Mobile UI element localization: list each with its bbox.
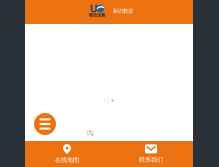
staticText: 联系我们 bbox=[139, 156, 163, 164]
staticText: 联合运营 bbox=[89, 12, 105, 18]
staticText: U bbox=[90, 1, 98, 15]
button[interactable]: Menu bbox=[34, 113, 56, 135]
button[interactable]: 联系我们 bbox=[109, 141, 193, 167]
staticText: 在线地图 bbox=[55, 156, 79, 164]
staticText: 标识数据 bbox=[113, 8, 133, 14]
button[interactable]: 在线地图 bbox=[25, 141, 109, 167]
